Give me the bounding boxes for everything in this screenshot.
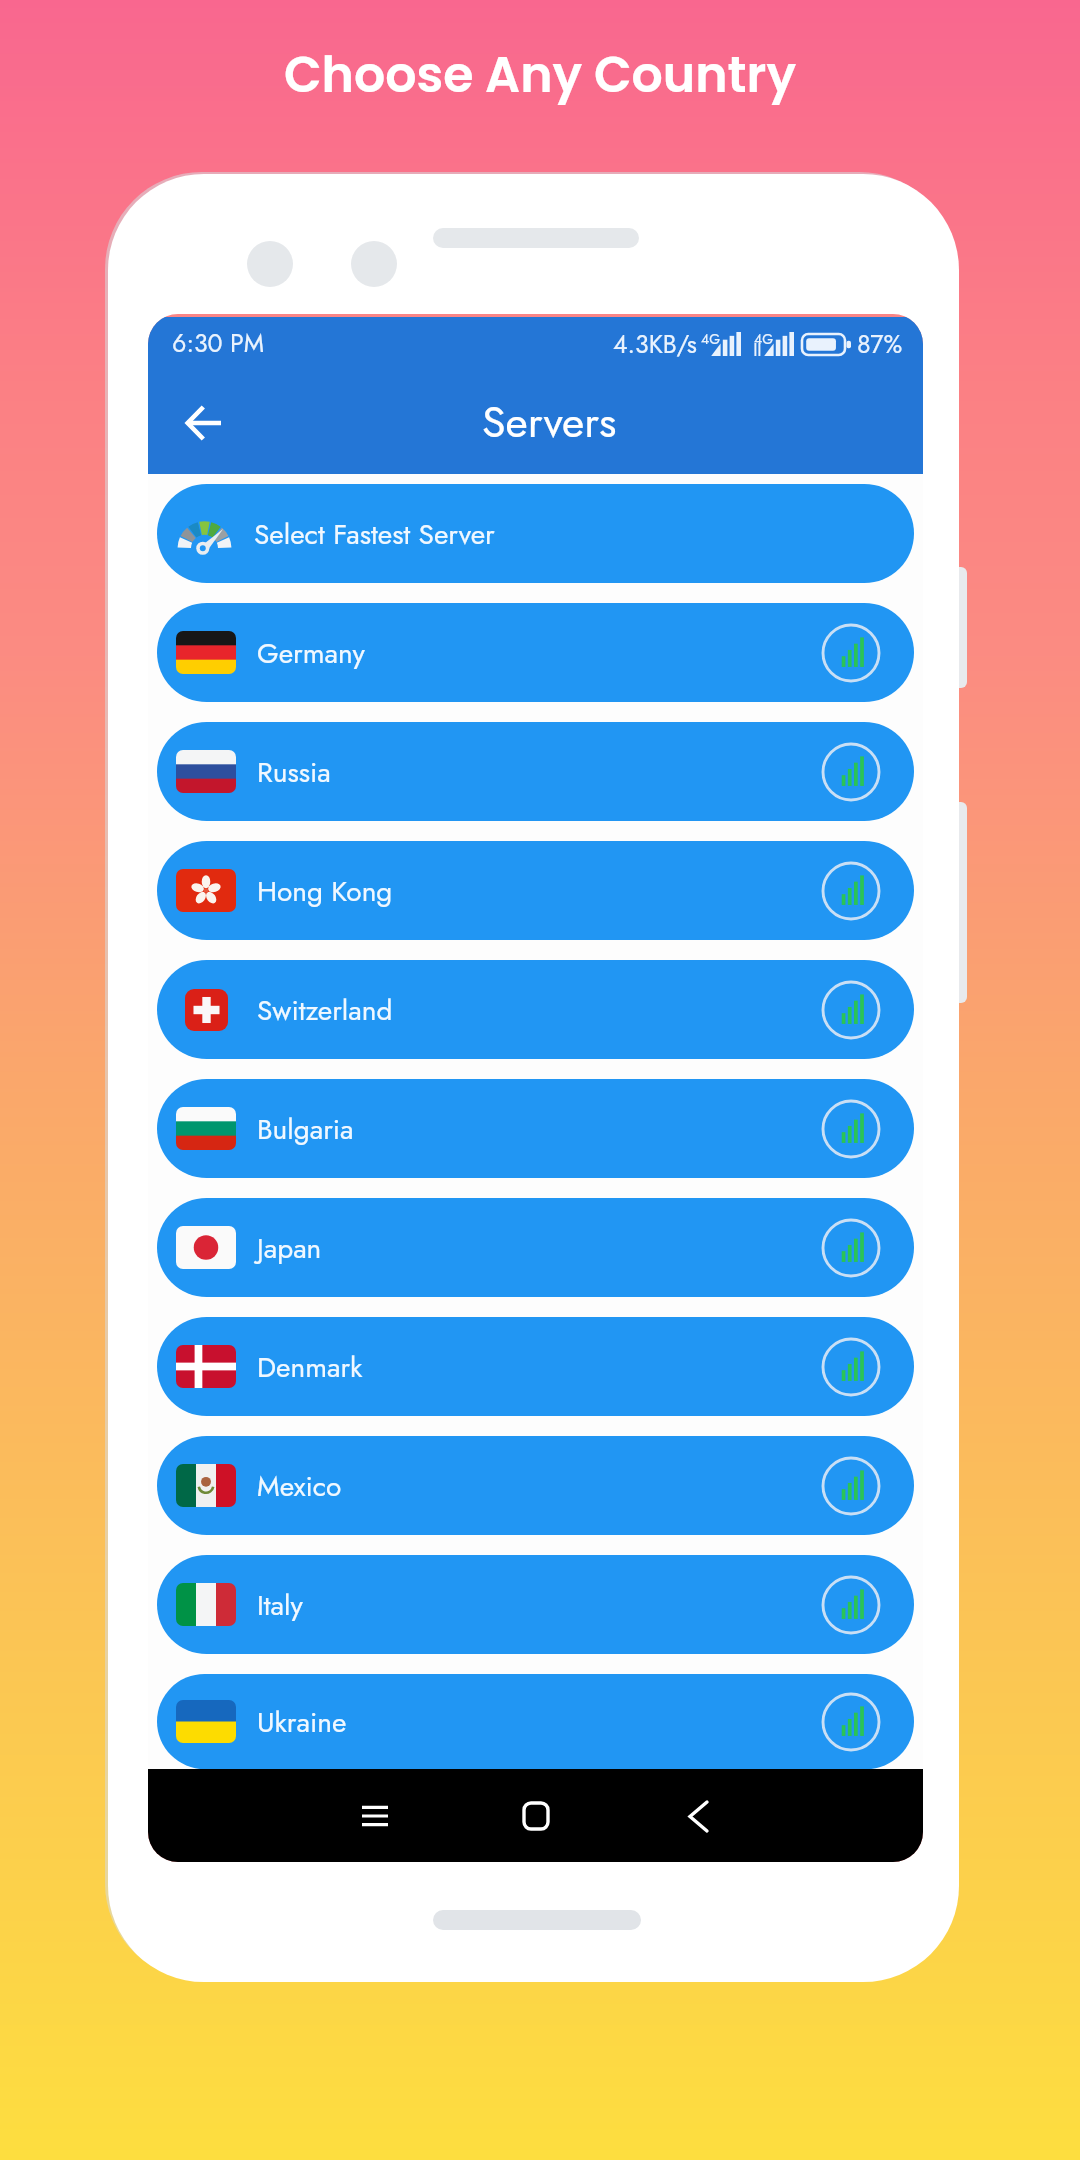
button[interactable]: Germany	[157, 603, 914, 702]
staticText: 4G	[754, 329, 774, 349]
button[interactable]: Back	[661, 1779, 735, 1853]
staticText: Denmark	[257, 1347, 363, 1387]
staticText: Japan	[257, 1228, 322, 1268]
button[interactable]: Ukraine	[157, 1674, 914, 1769]
staticText: Hong Kong	[257, 871, 393, 911]
staticText: 4.3KB/s	[613, 326, 697, 362]
staticText: Mexico	[257, 1466, 342, 1506]
staticText: Choose Any Country	[0, 41, 1080, 110]
button[interactable]: Japan	[157, 1198, 914, 1297]
button[interactable]: Home	[499, 1779, 573, 1853]
staticText: Switzerland	[257, 990, 393, 1030]
staticText: Servers	[482, 391, 617, 453]
button[interactable]: Hong Kong	[157, 841, 914, 940]
button[interactable]: Select Fastest Server	[157, 484, 914, 583]
button[interactable]: Bulgaria	[157, 1079, 914, 1178]
button[interactable]: Recent apps	[338, 1779, 412, 1853]
button[interactable]: Denmark	[157, 1317, 914, 1416]
button[interactable]: Russia	[157, 722, 914, 821]
button[interactable]: Mexico	[157, 1436, 914, 1535]
staticText: 6:30 PM	[172, 325, 265, 361]
button[interactable]: Switzerland	[157, 960, 914, 1059]
staticText: Germany	[257, 633, 365, 673]
staticText: 4G	[701, 329, 721, 349]
staticText: Italy	[257, 1585, 303, 1625]
staticText: 87%	[857, 326, 903, 362]
staticText: Select Fastest Server	[254, 514, 495, 554]
staticText: Russia	[257, 752, 331, 792]
staticText: Ukraine	[257, 1702, 347, 1742]
staticText: Bulgaria	[257, 1109, 354, 1149]
button[interactable]: Italy	[157, 1555, 914, 1654]
button[interactable]: Back	[168, 387, 240, 459]
